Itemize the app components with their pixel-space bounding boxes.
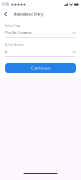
staticText: Attendance Entry [14, 11, 43, 17]
button[interactable]: Back [1, 9, 11, 19]
staticText: A [5, 50, 7, 54]
staticText: Select Class [5, 24, 20, 28]
staticText: Select Section [5, 43, 24, 47]
button[interactable]: Select Section [0, 43, 81, 57]
staticText: Continue [31, 65, 50, 71]
staticText: 9:30 [2, 3, 9, 6]
staticText: Plus Two Commerce [5, 31, 32, 35]
button[interactable]: Select Class [0, 24, 81, 38]
button[interactable]: Continue [5, 63, 76, 73]
